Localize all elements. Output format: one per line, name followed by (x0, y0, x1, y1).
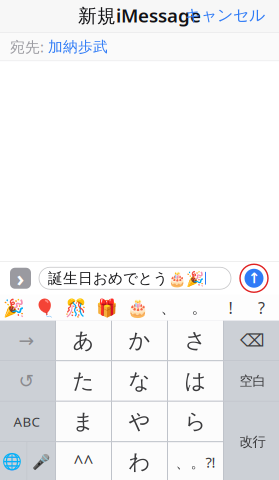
staticText: 🎈 (33, 298, 55, 318)
staticText: 🎤 (32, 454, 50, 470)
staticText: 誕生日おめでとう🎂🎉 (48, 269, 204, 287)
staticText: 新規iMessage (78, 3, 201, 28)
button[interactable]: ABC (0, 402, 55, 441)
button[interactable]: 、。?! (168, 442, 223, 480)
button[interactable]: App drawer (10, 268, 31, 289)
button[interactable]: や (112, 402, 167, 441)
staticText: 🎉 (2, 298, 24, 318)
button[interactable]: 空白 (224, 361, 279, 401)
staticText: た (72, 368, 94, 394)
staticText: あ (72, 327, 94, 354)
staticText: ? (258, 297, 265, 318)
staticText: や (128, 408, 150, 435)
staticText: 改行 (239, 434, 265, 450)
staticText: わ (128, 449, 150, 475)
button[interactable]: は (168, 361, 223, 401)
staticText: 加納歩武 (48, 38, 108, 56)
button[interactable]: た (56, 361, 111, 401)
button[interactable]: Emoji 🎊 (60, 296, 91, 320)
staticText: ま (72, 408, 94, 435)
button[interactable]: ら (168, 402, 223, 441)
button[interactable]: Send (243, 267, 265, 289)
button[interactable]: か (112, 321, 167, 360)
staticText: ら (184, 408, 206, 435)
button[interactable]: さ (168, 321, 223, 360)
staticText: 、 (160, 298, 176, 318)
staticText: な (128, 368, 150, 394)
button[interactable]: 宛先: (0, 33, 279, 61)
button[interactable]: ? (246, 296, 277, 320)
staticText: 🎂 (126, 298, 148, 318)
button[interactable]: ^^ (56, 442, 111, 480)
staticText: › (16, 264, 24, 292)
staticText: は (184, 368, 206, 394)
staticText: キャンセル (185, 5, 265, 25)
button[interactable]: 、 (153, 296, 184, 320)
button[interactable]: Emoji 🎈 (29, 296, 60, 320)
staticText: ⌫ (240, 331, 265, 350)
staticText: 🌐 (2, 453, 22, 471)
button[interactable]: 。 (184, 296, 215, 320)
staticText: ABC (13, 413, 39, 430)
button[interactable]: キャンセル (175, 0, 275, 31)
staticText: 空白 (239, 373, 265, 389)
button[interactable]: ↺ (0, 361, 55, 401)
button[interactable]: Emoji 🎁 (91, 296, 122, 320)
staticText: ! (228, 297, 232, 318)
staticText: さ (184, 327, 206, 354)
staticText: ^^ (73, 450, 93, 473)
button[interactable]: Dictation (27, 442, 55, 480)
button[interactable]: Emoji 🎉 (0, 296, 29, 320)
staticText: → (18, 330, 34, 351)
staticText: ↺ (18, 370, 34, 392)
button[interactable]: ⌫ (224, 321, 279, 360)
staticText: 🎁 (95, 298, 117, 318)
button[interactable]: ! (215, 296, 246, 320)
button[interactable]: 誕生日おめでとう🎂🎉 (39, 267, 231, 289)
staticText: ↑ (248, 270, 260, 286)
staticText: 。 (191, 298, 207, 318)
button[interactable]: あ (56, 321, 111, 360)
staticText: か (128, 327, 150, 354)
button[interactable]: な (112, 361, 167, 401)
staticText: 宛先: (10, 37, 44, 56)
button[interactable]: Emoji 🎂 (122, 296, 153, 320)
button[interactable]: Next keyboard (0, 442, 26, 480)
button[interactable]: わ (112, 442, 167, 480)
staticText: 、。?! (175, 452, 215, 472)
staticText: 🎊 (64, 298, 86, 318)
button[interactable]: 改行 (224, 402, 279, 480)
button[interactable]: ま (56, 402, 111, 441)
button[interactable]: → (0, 321, 55, 360)
